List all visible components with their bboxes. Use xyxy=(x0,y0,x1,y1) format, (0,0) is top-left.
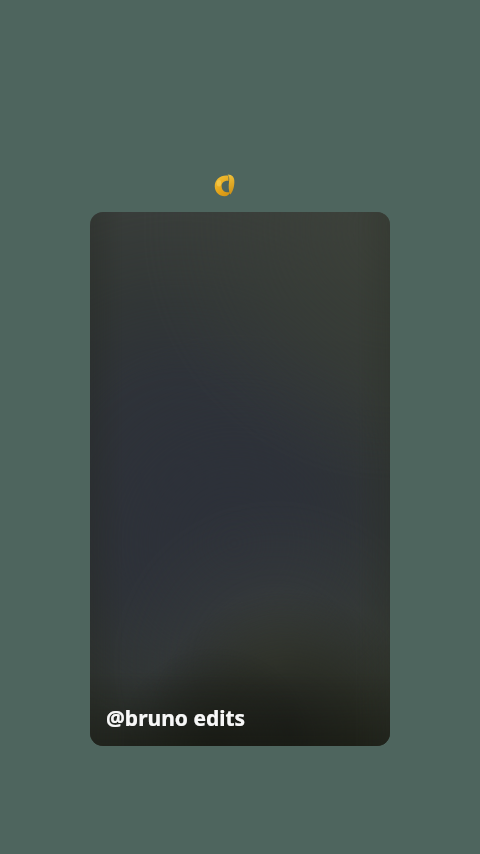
button[interactable]: Flexed biceps emoji xyxy=(210,171,238,201)
staticText: @bruno edits xyxy=(106,704,246,733)
button[interactable]: @bruno edits xyxy=(90,212,390,746)
